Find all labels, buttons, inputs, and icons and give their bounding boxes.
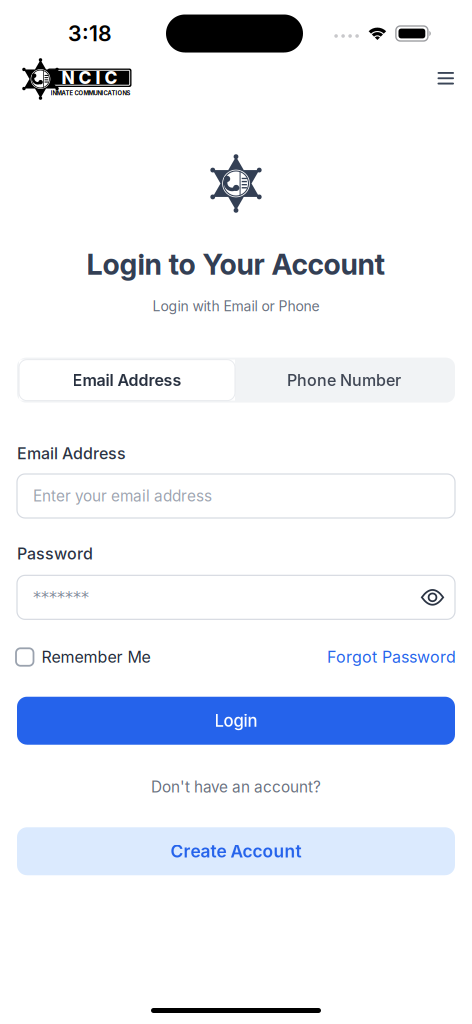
staticText: Remember Me bbox=[41, 647, 150, 667]
button[interactable]: NCIC Home bbox=[13, 58, 138, 100]
button[interactable]: Email Address bbox=[19, 360, 235, 401]
staticText: Email Address bbox=[17, 444, 126, 463]
button[interactable]: Forgot Password bbox=[327, 647, 456, 667]
staticText: Password bbox=[17, 544, 93, 563]
staticText: INMATE COMMUNICATIONS bbox=[50, 89, 130, 97]
button[interactable]: Remember Me bbox=[16, 647, 150, 667]
button[interactable]: Show password bbox=[421, 588, 444, 606]
staticText: Login to Your Account bbox=[86, 247, 385, 282]
button[interactable]: Login bbox=[17, 697, 455, 745]
button[interactable]: Create Account bbox=[17, 827, 455, 875]
staticText: ******* bbox=[33, 588, 89, 607]
staticText: Login with Email or Phone bbox=[152, 298, 319, 315]
staticText: Email Address bbox=[72, 370, 181, 390]
button[interactable]: Phone Number bbox=[235, 360, 453, 401]
staticText: Login bbox=[214, 711, 257, 731]
staticText: 3:18 bbox=[68, 21, 112, 46]
staticText: Forgot Password bbox=[327, 647, 456, 667]
button[interactable]: Menu bbox=[431, 66, 460, 90]
staticText: Phone Number bbox=[287, 370, 401, 390]
staticText: Don't have an account? bbox=[151, 778, 321, 796]
staticText: N C I C bbox=[61, 67, 117, 88]
staticText: Create Account bbox=[170, 841, 301, 862]
staticText: Enter your email address bbox=[33, 487, 212, 505]
